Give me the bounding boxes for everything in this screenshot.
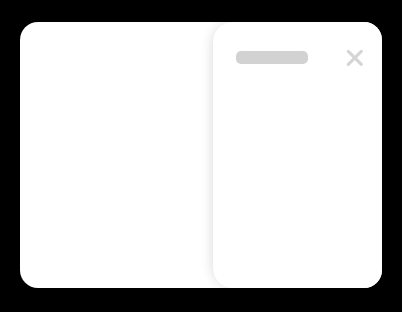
button[interactable]: Close (341, 44, 369, 72)
